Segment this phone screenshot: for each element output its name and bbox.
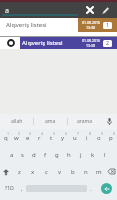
button[interactable]: a (6, 146, 17, 163)
staticText: 4 (41, 131, 44, 136)
button[interactable]: 1 (0, 129, 11, 146)
staticText: . (90, 185, 92, 193)
button[interactable]: allah (0, 114, 33, 129)
button[interactable]: m (92, 163, 105, 180)
button[interactable]: c (40, 163, 53, 180)
staticText: 01.08.2016 (82, 38, 100, 43)
staticText: 2 (18, 131, 21, 136)
staticText: ?1Ω (5, 185, 14, 192)
staticText: Alışveriş listesi (22, 39, 63, 47)
staticText: h (67, 151, 71, 159)
staticText: a (10, 151, 14, 159)
staticText: arama (77, 118, 93, 125)
button[interactable]: Alışveriş listesi (0, 18, 117, 32)
button[interactable]: 0 (105, 129, 117, 146)
staticText: , (21, 185, 23, 193)
button[interactable]: 6 (57, 129, 69, 146)
staticText: f (44, 151, 47, 159)
staticText: a (5, 6, 9, 16)
staticText: k (91, 151, 95, 159)
button[interactable]: Close (82, 2, 97, 18)
staticText: c (45, 168, 48, 176)
button[interactable]: s (17, 146, 28, 163)
button[interactable]: f (39, 146, 51, 163)
button[interactable]: d (28, 146, 39, 163)
staticText: 8 (89, 131, 92, 136)
staticText: 13:38 (86, 43, 95, 48)
button[interactable]: h (63, 146, 75, 163)
staticText: n (84, 168, 88, 176)
staticText: p (109, 134, 113, 142)
staticText: q (4, 134, 8, 142)
staticText: w (14, 134, 19, 142)
staticText: 7 (77, 131, 80, 136)
button[interactable]: Shift (0, 163, 12, 180)
button[interactable]: 3 (22, 129, 33, 146)
staticText: 5 (53, 131, 56, 136)
button[interactable]: k (87, 146, 99, 163)
staticText: 9 (101, 131, 104, 136)
staticText: t (50, 134, 53, 142)
staticText: Alışveriş listesi (6, 21, 47, 29)
button[interactable]: ?1Ω (0, 180, 18, 197)
staticText: i (86, 134, 88, 142)
button[interactable]: 8 (81, 129, 93, 146)
staticText: x (31, 168, 35, 176)
button[interactable]: n (79, 163, 92, 180)
staticText: d (32, 151, 36, 159)
button[interactable]: 7 (69, 129, 81, 146)
button[interactable]: j (75, 146, 87, 163)
staticText: m (96, 168, 102, 176)
button[interactable]: l (99, 146, 111, 163)
staticText: j (80, 151, 82, 159)
staticText: allah (11, 118, 23, 125)
staticText: u (73, 134, 77, 142)
staticText: b (71, 168, 75, 176)
button[interactable]: 2 (11, 129, 22, 146)
button[interactable]: 5 (45, 129, 57, 146)
button[interactable]: Voice input (101, 114, 117, 129)
staticText: l (104, 151, 106, 159)
staticText: z (18, 168, 21, 176)
button[interactable]: x (26, 163, 40, 180)
button[interactable]: ama (34, 114, 67, 129)
button[interactable]: 9 (93, 129, 105, 146)
button[interactable]: Enter (101, 183, 112, 194)
button[interactable]: 4 (33, 129, 45, 146)
staticText: 1 (7, 131, 10, 136)
button[interactable]: g (51, 146, 63, 163)
staticText: y (61, 134, 65, 142)
button[interactable]: . (87, 180, 95, 197)
staticText: v (58, 168, 62, 176)
staticText: o (97, 134, 101, 142)
button[interactable]: , (18, 180, 26, 197)
staticText: g (55, 151, 59, 159)
staticText: e (26, 134, 30, 142)
staticText: 6 (65, 131, 68, 136)
staticText: 3 (29, 131, 32, 136)
button[interactable]: v (53, 163, 66, 180)
button[interactable]: Alışveriş listesi (0, 37, 117, 49)
staticText: 0 (113, 131, 116, 136)
staticText: s (21, 151, 24, 159)
button[interactable]: Backspace (105, 163, 117, 180)
button[interactable]: z (12, 163, 26, 180)
staticText: r (38, 134, 41, 142)
staticText: ama (45, 118, 56, 125)
button[interactable]: Edit (98, 2, 113, 18)
staticText: 1 (106, 22, 109, 29)
staticText: 01.08.2016 (82, 20, 100, 25)
button[interactable]: b (66, 163, 79, 180)
button[interactable]: arama (68, 114, 101, 129)
staticText: 13:38 (86, 25, 95, 30)
staticText: 2 (106, 40, 109, 47)
